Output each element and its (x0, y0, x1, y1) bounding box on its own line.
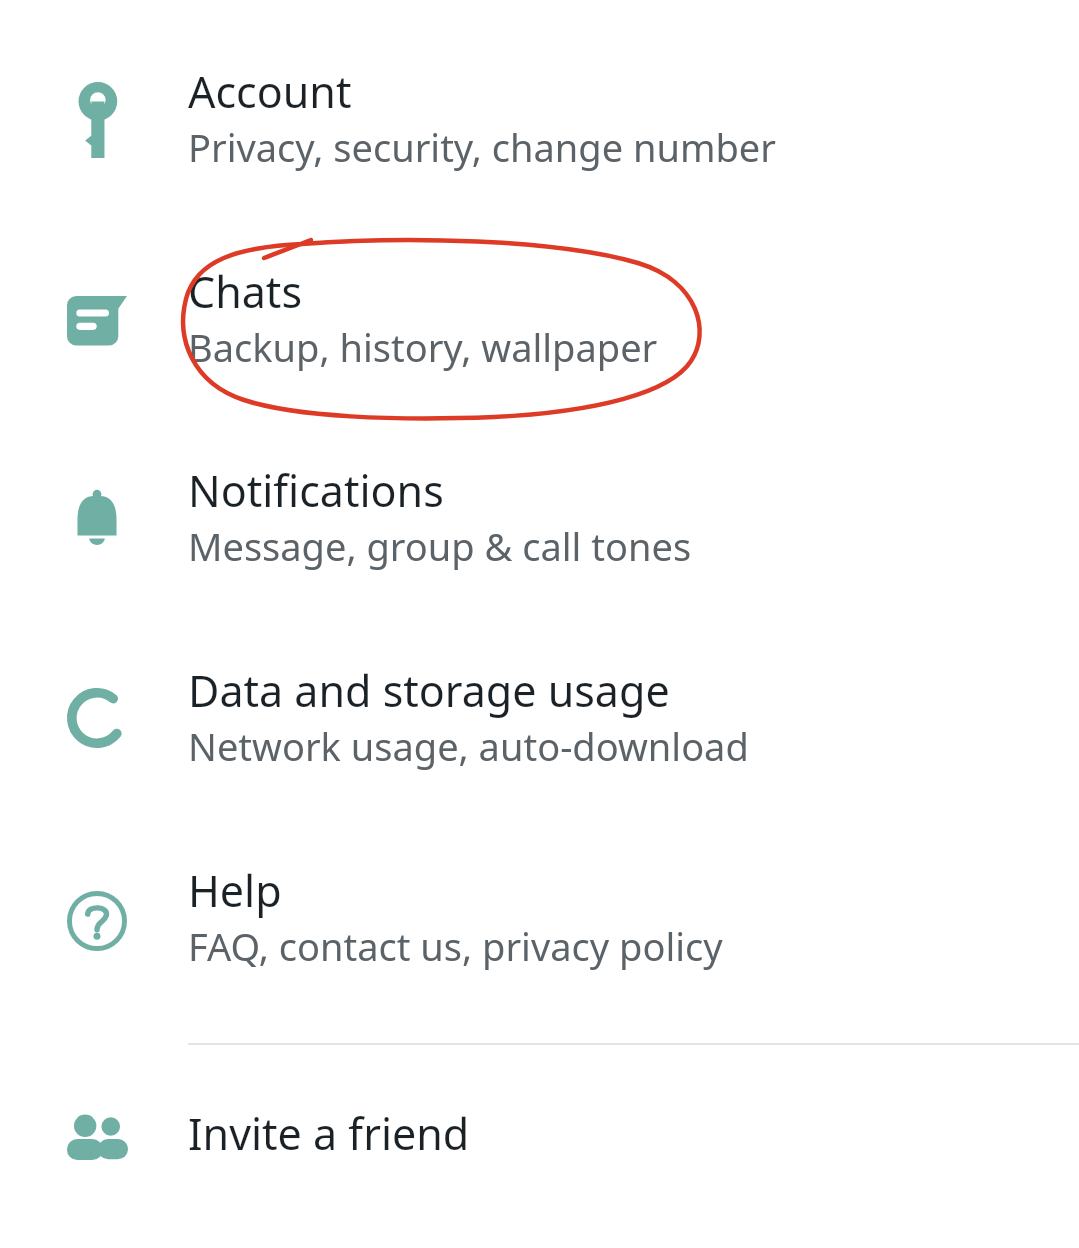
staticText: Help (188, 861, 282, 920)
staticText: Privacy, security, change number (188, 121, 776, 173)
staticText: Network usage, auto-download (188, 720, 749, 772)
staticText: Invite a friend (188, 1104, 470, 1163)
staticText: Notifications (188, 461, 444, 520)
staticText: Message, group & call tones (188, 520, 692, 572)
staticText: FAQ, contact us, privacy policy (188, 920, 723, 972)
staticText: Chats (188, 262, 302, 321)
button[interactable]: Help (0, 861, 1079, 1021)
staticText: Data and storage usage (188, 661, 670, 720)
button[interactable]: Notifications (0, 461, 1079, 621)
staticText: Account (188, 62, 352, 121)
button[interactable]: Invite a friend (0, 1104, 1079, 1214)
button[interactable]: Account (0, 62, 1079, 222)
button[interactable]: Data and storage usage (0, 661, 1079, 821)
button[interactable]: Chats (0, 262, 1079, 422)
staticText: Backup, history, wallpaper (188, 321, 658, 373)
